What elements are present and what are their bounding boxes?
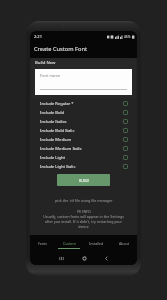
staticText: Include Bold <box>40 110 65 116</box>
staticText: pick the .ttf file using file manager <box>55 198 113 203</box>
button[interactable]: Home <box>79 253 89 263</box>
button[interactable]: Include Light <box>30 153 137 162</box>
button[interactable]: Recent apps <box>56 253 66 263</box>
button[interactable]: Back <box>101 253 111 263</box>
button[interactable]: Include Regular * <box>30 99 137 108</box>
staticText: Create Custom Font <box>34 45 88 53</box>
button[interactable]: Include Bold Italic <box>30 126 137 135</box>
button[interactable]: Include Medium <box>30 135 137 144</box>
staticText: PE INFO <box>77 209 91 214</box>
staticText: device <box>78 224 89 229</box>
staticText: About <box>119 241 129 246</box>
button[interactable]: Include Bold <box>30 108 137 117</box>
staticText: Installed <box>89 241 104 246</box>
staticText: after you install. If it didn't, try res… <box>45 219 122 224</box>
staticText: 2:21 <box>34 34 42 39</box>
staticText: Include Medium Italic <box>40 146 82 152</box>
button[interactable]: Fonts <box>30 236 56 249</box>
button[interactable]: About <box>110 236 137 249</box>
staticText: Fonts <box>38 241 48 246</box>
staticText: Include Italics <box>40 119 67 125</box>
staticText: 46% <box>124 35 131 39</box>
button[interactable]: Include Medium Italic <box>30 144 137 153</box>
staticText: Include Medium <box>40 137 72 143</box>
staticText: Usually, custom fonts will appear in the… <box>43 214 124 219</box>
button[interactable]: Installed <box>83 236 110 249</box>
staticText: Include Light Italic <box>40 164 76 170</box>
staticText: Include Bold Italic <box>40 128 75 134</box>
staticText: Build New <box>35 59 56 65</box>
staticText: Custom <box>63 241 76 246</box>
button[interactable]: BUILD <box>57 174 110 186</box>
button[interactable]: Font name <box>35 69 132 95</box>
button[interactable]: Include Light Italic <box>30 162 137 171</box>
staticText: Include Light <box>40 155 66 161</box>
staticText: Font name <box>40 73 61 78</box>
button[interactable]: Include Italics <box>30 117 137 126</box>
staticText: BUILD <box>79 178 89 182</box>
staticText: Include Regular * <box>40 101 74 107</box>
button[interactable]: Custom <box>56 236 83 249</box>
